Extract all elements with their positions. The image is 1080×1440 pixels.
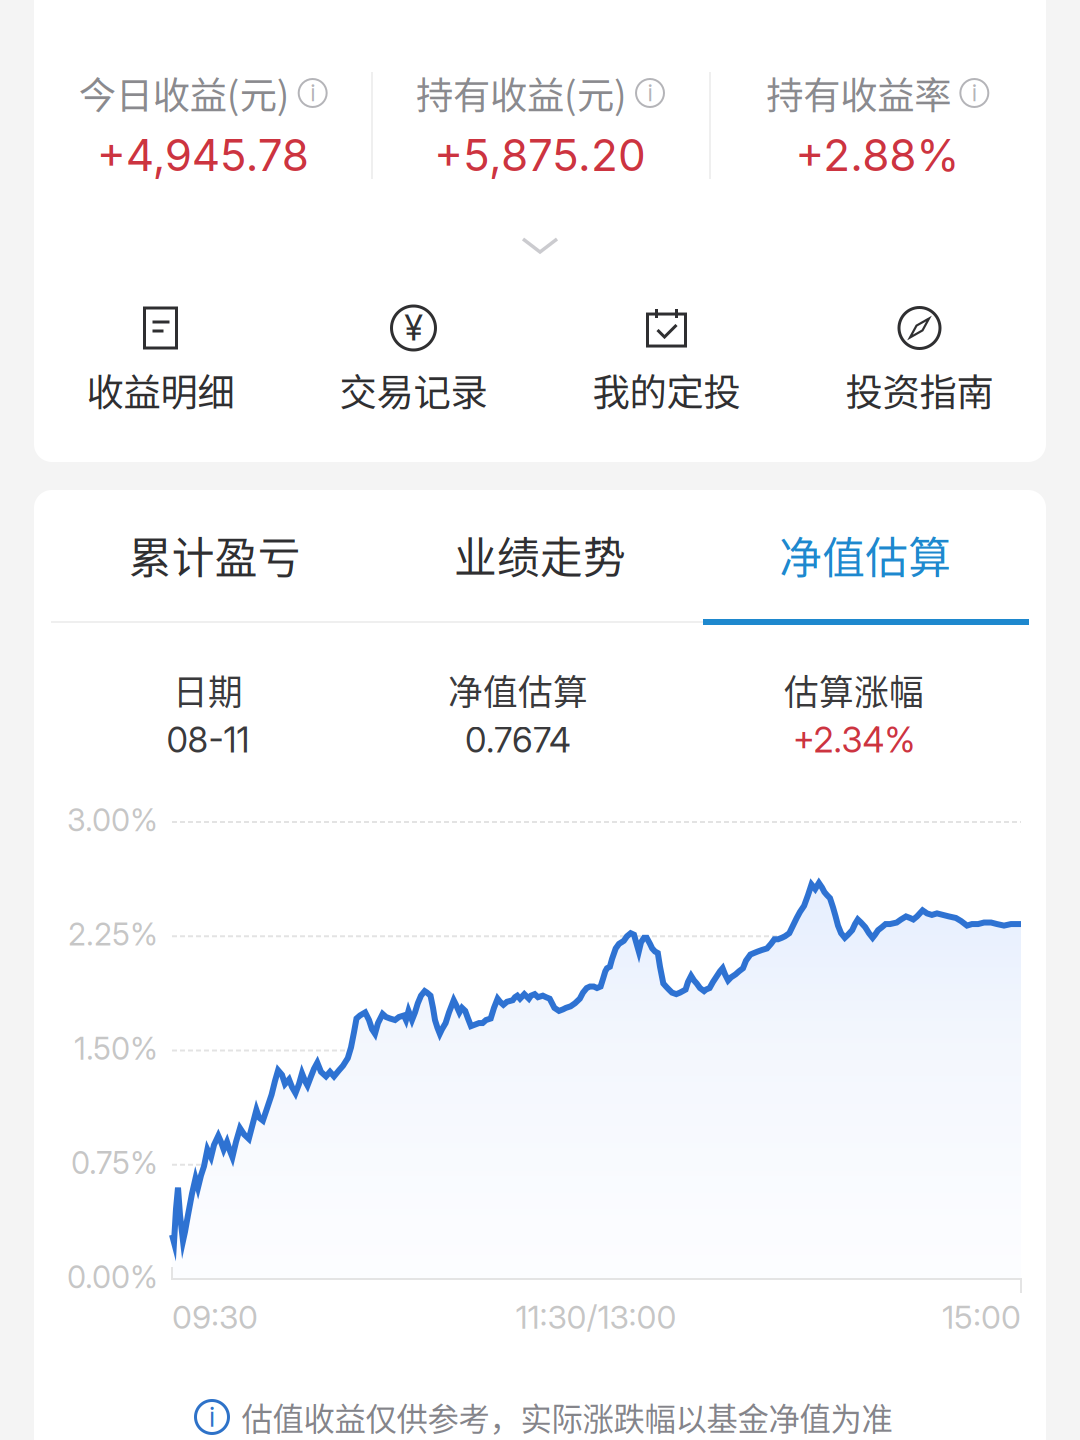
button[interactable]: 我的定投	[540, 302, 793, 414]
staticText: +2.34%	[792, 719, 915, 761]
staticText: 估值收益仅供参考，实际涨跌幅以基金净值为准	[241, 1394, 892, 1440]
staticText: 今日收益(元)	[79, 66, 290, 120]
staticText: 交易记录	[339, 363, 487, 417]
staticText: 累计盈亏	[129, 524, 301, 586]
button[interactable]: 收益明细	[34, 302, 287, 414]
staticText: 投资指南	[845, 363, 993, 417]
staticText: 1.50%	[74, 1030, 158, 1067]
button[interactable]: 展开	[481, 211, 599, 280]
staticText: 0.75%	[71, 1144, 158, 1181]
staticText: +4,945.78	[97, 128, 309, 182]
staticText: 日期	[173, 665, 243, 715]
staticText: 净值估算	[779, 524, 951, 586]
staticText: 0.00%	[67, 1258, 158, 1295]
staticText: i	[972, 79, 977, 107]
staticText: 3.00%	[67, 801, 158, 838]
staticText: 业绩走势	[454, 524, 626, 586]
staticText: 09:30	[172, 1298, 258, 1336]
staticText: i	[310, 79, 315, 107]
staticText: 持有收益率	[766, 66, 951, 120]
staticText: +2.88%	[795, 128, 959, 182]
staticText: i	[647, 79, 652, 107]
staticText: 15:00	[942, 1298, 1021, 1336]
staticText: 11:30/13:00	[515, 1298, 676, 1336]
staticText: i	[209, 1401, 215, 1433]
staticText: 估算涨幅	[784, 665, 924, 715]
button[interactable]: 累计盈亏	[52, 490, 377, 620]
staticText: 净值估算	[448, 665, 588, 715]
button[interactable]: 净值估算	[703, 490, 1028, 620]
staticText: 0.7674	[465, 719, 571, 761]
staticText: 收益明细	[86, 363, 234, 417]
staticText: +5,875.20	[434, 128, 646, 182]
button[interactable]: 业绩走势	[377, 490, 703, 620]
staticText: ¥	[404, 307, 422, 349]
staticText: 持有收益(元)	[416, 66, 627, 120]
staticText: 我的定投	[592, 363, 740, 417]
staticText: 2.25%	[68, 916, 158, 953]
button[interactable]: ¥	[287, 302, 540, 414]
staticText: 08-11	[166, 719, 249, 761]
button[interactable]: 投资指南	[793, 302, 1046, 414]
